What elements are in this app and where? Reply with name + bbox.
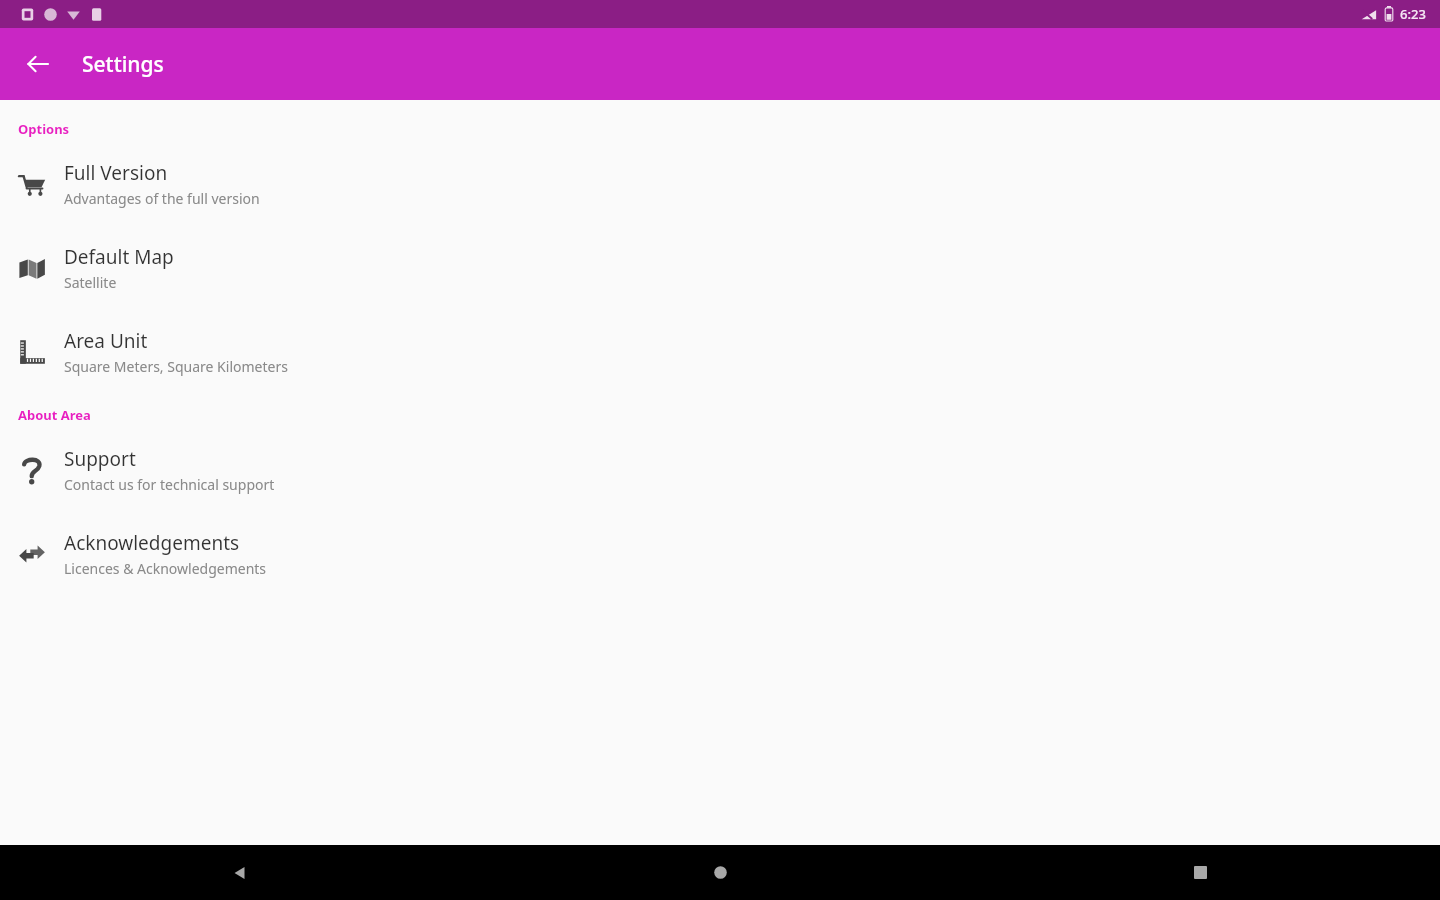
staticText: Licences & Acknowledgements bbox=[64, 559, 267, 578]
staticText: Full Version bbox=[64, 160, 168, 186]
staticText: Settings bbox=[82, 50, 164, 79]
button[interactable]: Back bbox=[0, 845, 480, 900]
staticText: Support bbox=[64, 446, 136, 472]
staticText: Area Unit bbox=[64, 328, 148, 354]
staticText: Satellite bbox=[64, 273, 117, 292]
staticText: 6:23 bbox=[1400, 5, 1426, 23]
staticText: Advantages of the full version bbox=[64, 189, 260, 208]
button[interactable]: Full Version bbox=[0, 142, 1440, 226]
staticText: Acknowledgements bbox=[64, 530, 240, 556]
staticText: Options bbox=[18, 120, 70, 138]
button[interactable]: Support bbox=[0, 428, 1440, 512]
staticText: Contact us for technical support bbox=[64, 475, 275, 494]
button[interactable]: Default Map bbox=[0, 226, 1440, 310]
staticText: Square Meters, Square Kilometers bbox=[64, 357, 288, 376]
button[interactable]: Acknowledgements bbox=[0, 512, 1440, 596]
button[interactable]: Back bbox=[14, 40, 62, 88]
button[interactable]: Area Unit bbox=[0, 310, 1440, 394]
button[interactable]: Recent apps bbox=[960, 845, 1440, 900]
button[interactable]: Home bbox=[480, 845, 960, 900]
staticText: Default Map bbox=[64, 244, 174, 270]
staticText: About Area bbox=[18, 406, 91, 424]
